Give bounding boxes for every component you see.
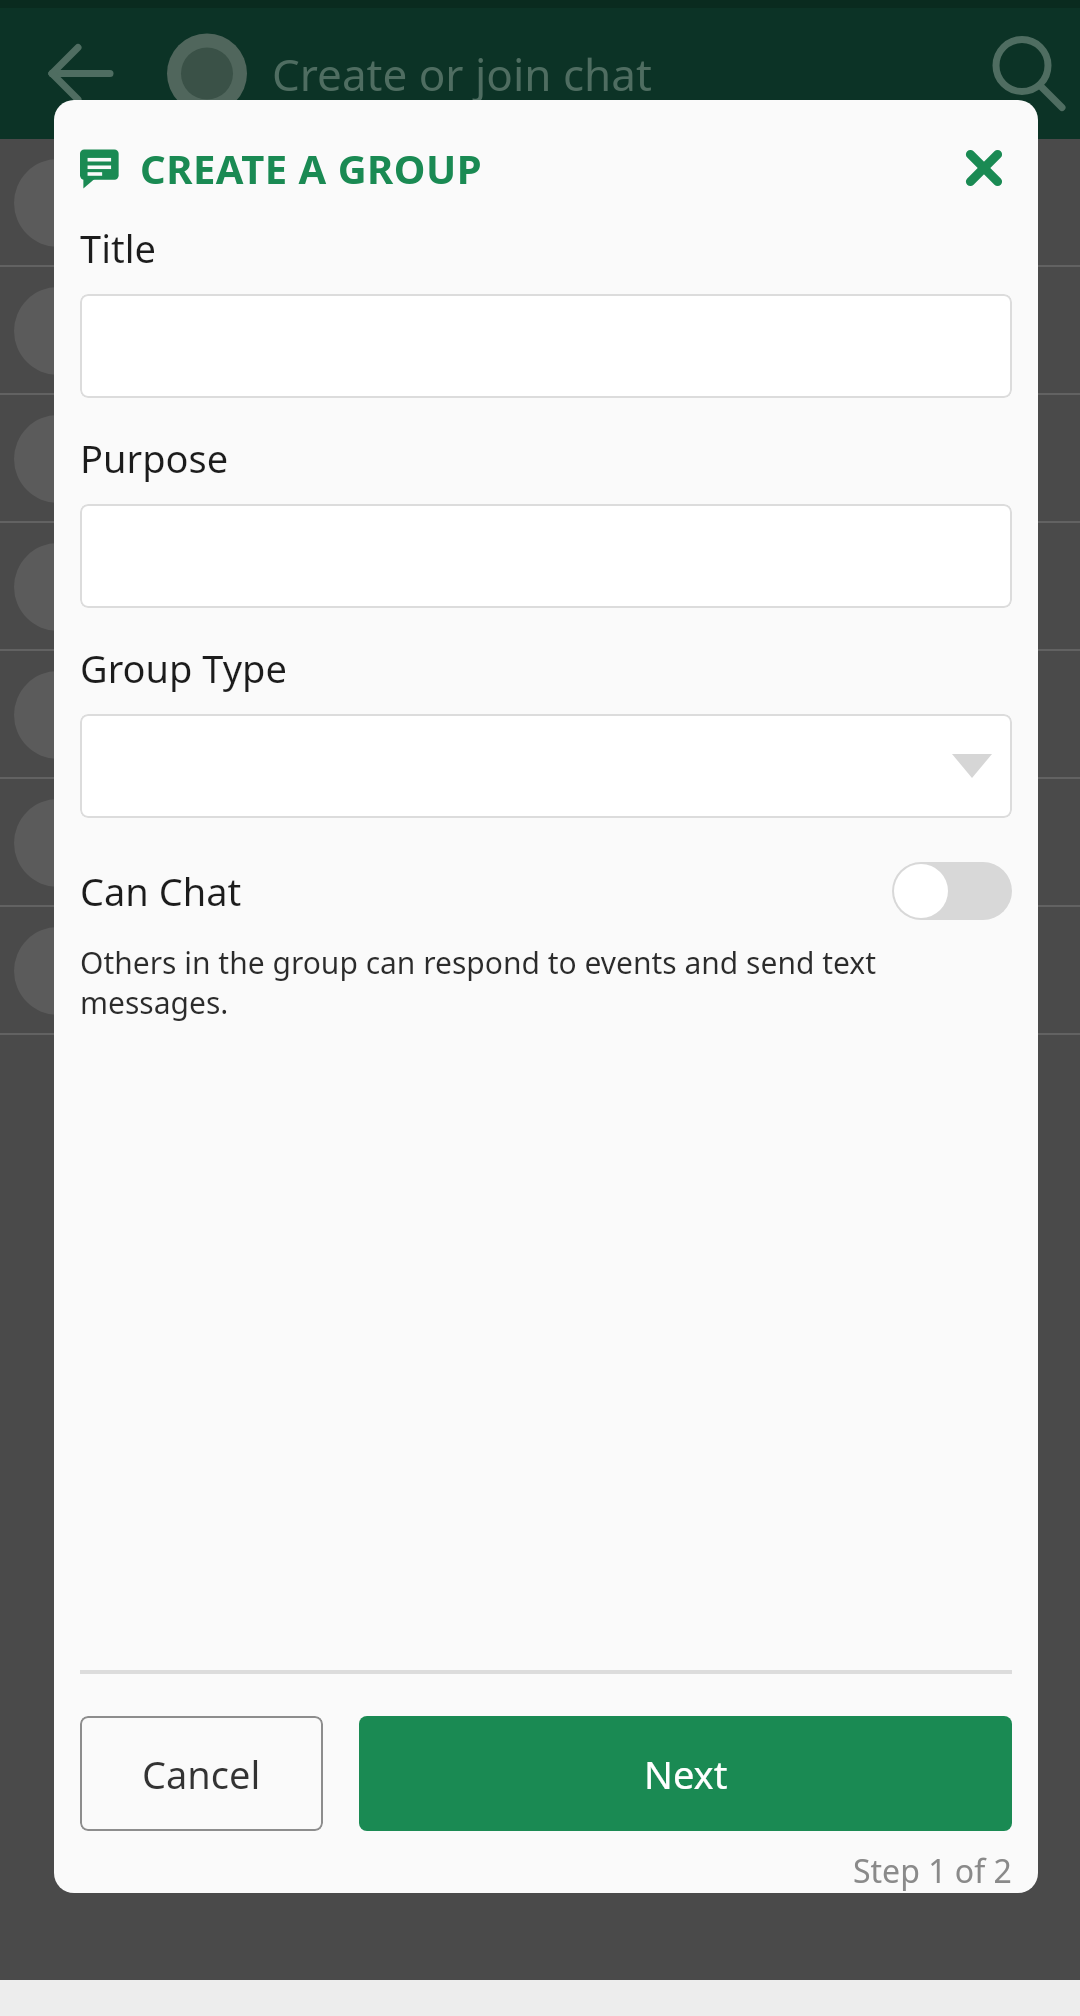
button[interactable] [80,504,1012,608]
button[interactable] [80,294,1012,398]
button[interactable] [80,714,1012,818]
staticText: Create or join chat [272,44,652,104]
staticText: Group Type [80,642,287,694]
staticText: Can Chat [80,865,242,917]
staticText: Cancel [142,1748,261,1800]
button[interactable]: Next [359,1716,1012,1831]
staticText: Next [644,1748,728,1800]
button[interactable]: Can Chat [80,862,1012,920]
staticText: Others in the group can respond to event… [80,942,1012,1023]
button[interactable]: Close [952,136,1016,200]
staticText: CREATE A GROUP [140,141,483,195]
staticText: Step 1 of 2 [853,1849,1012,1893]
staticText: Purpose [80,432,229,484]
button[interactable]: Cancel [80,1716,323,1831]
staticText: Title [80,222,156,274]
